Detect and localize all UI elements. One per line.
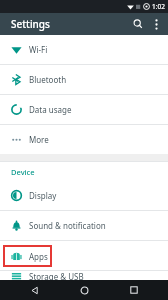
staticText: Sound & notification bbox=[29, 220, 106, 231]
staticText: Bluetooth bbox=[29, 74, 67, 85]
button[interactable]: Home bbox=[68, 280, 100, 300]
button[interactable]: Sound & notification bbox=[0, 211, 168, 240]
staticText: Device bbox=[11, 167, 35, 177]
staticText: Wi-Fi bbox=[29, 44, 48, 55]
button[interactable]: Wi-Fi bbox=[0, 35, 168, 64]
button[interactable]: Search bbox=[128, 14, 148, 34]
button[interactable]: Bluetooth bbox=[0, 65, 168, 94]
button[interactable]: Data usage bbox=[0, 95, 168, 124]
staticText: Storage & USB bbox=[29, 271, 84, 280]
staticText: More bbox=[29, 134, 49, 145]
staticText: Display bbox=[29, 190, 57, 201]
staticText: Apps bbox=[29, 251, 48, 262]
staticText: Data usage bbox=[29, 104, 72, 115]
button[interactable]: More options bbox=[148, 16, 164, 32]
staticText: Settings bbox=[11, 17, 50, 31]
button[interactable]: Display bbox=[0, 181, 168, 210]
button[interactable]: Recent apps bbox=[118, 280, 150, 300]
button[interactable]: More bbox=[0, 125, 168, 154]
button[interactable]: Storage & USB bbox=[0, 271, 168, 280]
button[interactable]: Apps bbox=[0, 241, 168, 270]
staticText: 1:02 bbox=[152, 2, 165, 11]
button[interactable]: Back bbox=[18, 280, 50, 300]
